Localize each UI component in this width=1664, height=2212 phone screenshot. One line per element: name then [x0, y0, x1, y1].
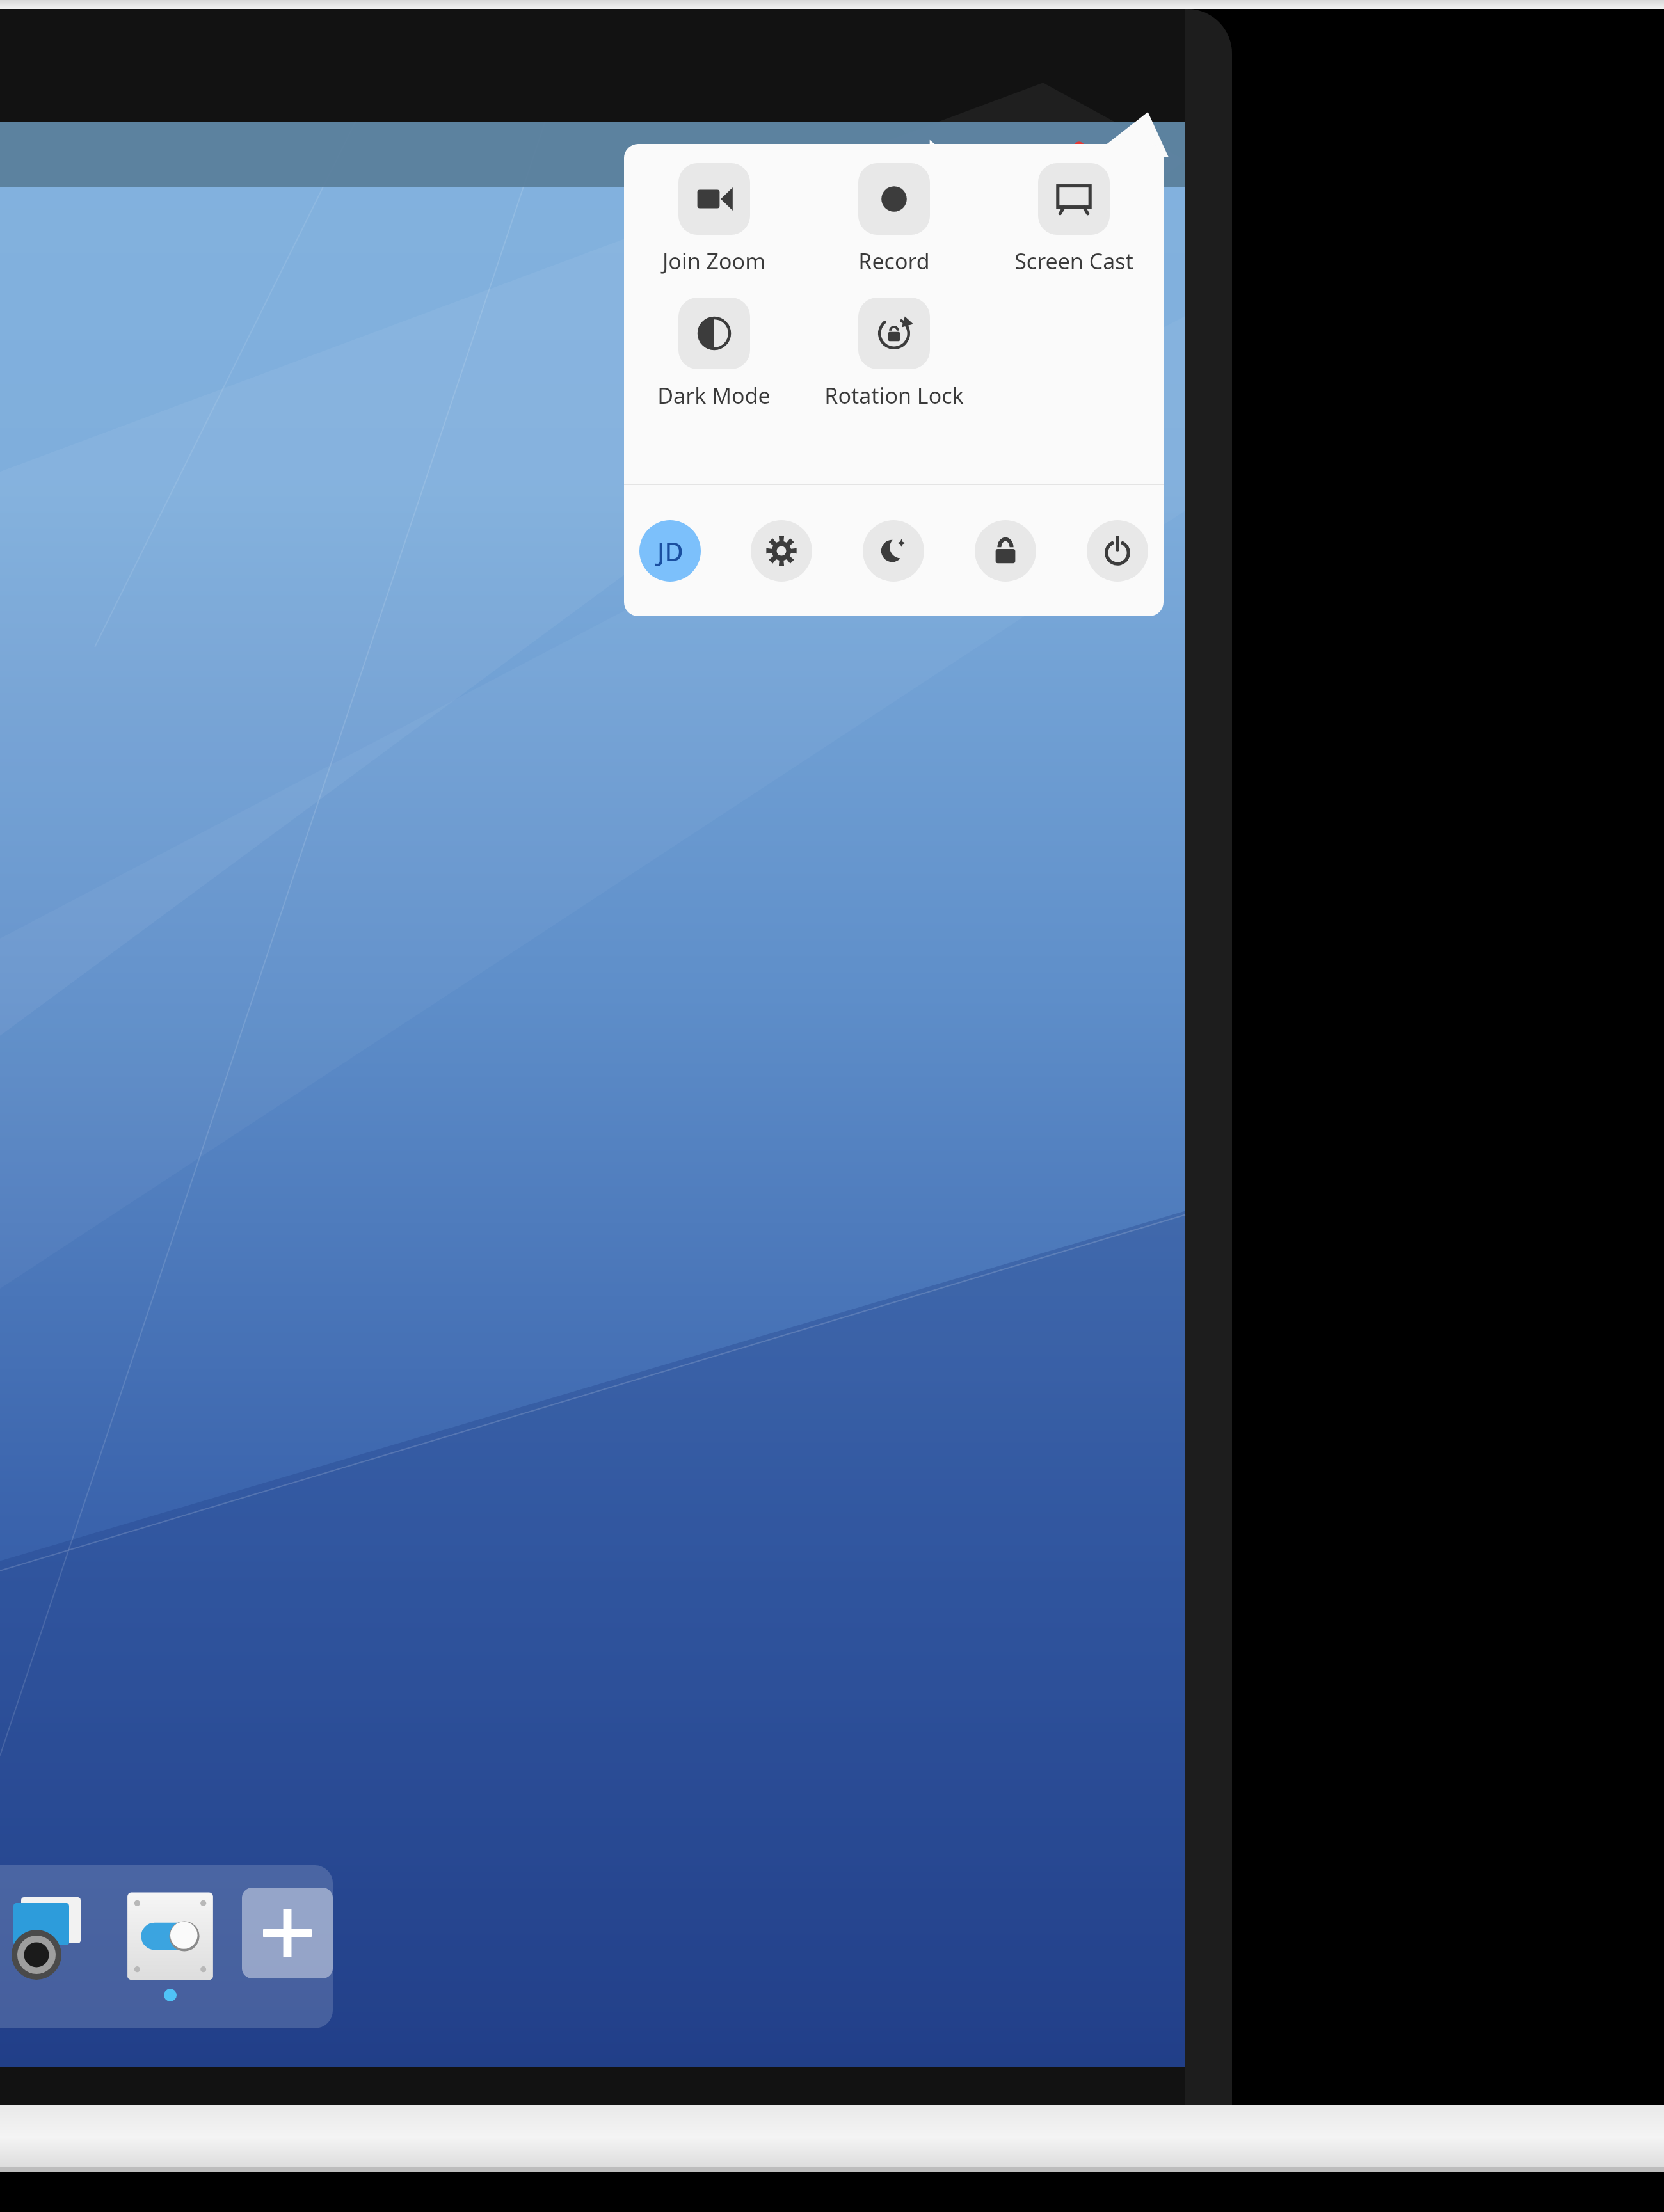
- button[interactable]: Settings: [751, 520, 812, 582]
- button[interactable]: JD: [639, 520, 701, 582]
- staticText: Screen Cast: [1014, 246, 1133, 276]
- button[interactable]: Join Zoom: [624, 161, 804, 278]
- button[interactable]: Photos: [19, 1888, 115, 1984]
- button[interactable]: Record: [804, 161, 984, 278]
- staticText: JD: [657, 534, 684, 568]
- staticText: Record: [858, 246, 930, 276]
- staticText: Dark Mode: [657, 381, 771, 410]
- button[interactable]: Bluetooth: [913, 136, 950, 173]
- button[interactable]: Power: [1087, 520, 1148, 582]
- button[interactable]: Do not disturb: [863, 520, 924, 582]
- button[interactable]: Add app: [242, 1888, 333, 1978]
- button[interactable]: Volume: [772, 136, 809, 173]
- button[interactable]: Quick settings: [1124, 136, 1161, 173]
- staticText: Rotation Lock: [824, 381, 964, 410]
- button[interactable]: Dark Mode: [624, 295, 804, 413]
- button[interactable]: Settings: [122, 1888, 219, 1985]
- button[interactable]: Lock: [975, 520, 1036, 582]
- button[interactable]: Notifications: [1053, 136, 1091, 173]
- button[interactable]: Rotation Lock: [804, 295, 984, 413]
- staticText: Join Zoom: [662, 246, 765, 276]
- button[interactable]: Battery: [983, 136, 1020, 173]
- button[interactable]: Screen Cast: [984, 161, 1164, 278]
- button[interactable]: Wi-Fi: [842, 136, 879, 173]
